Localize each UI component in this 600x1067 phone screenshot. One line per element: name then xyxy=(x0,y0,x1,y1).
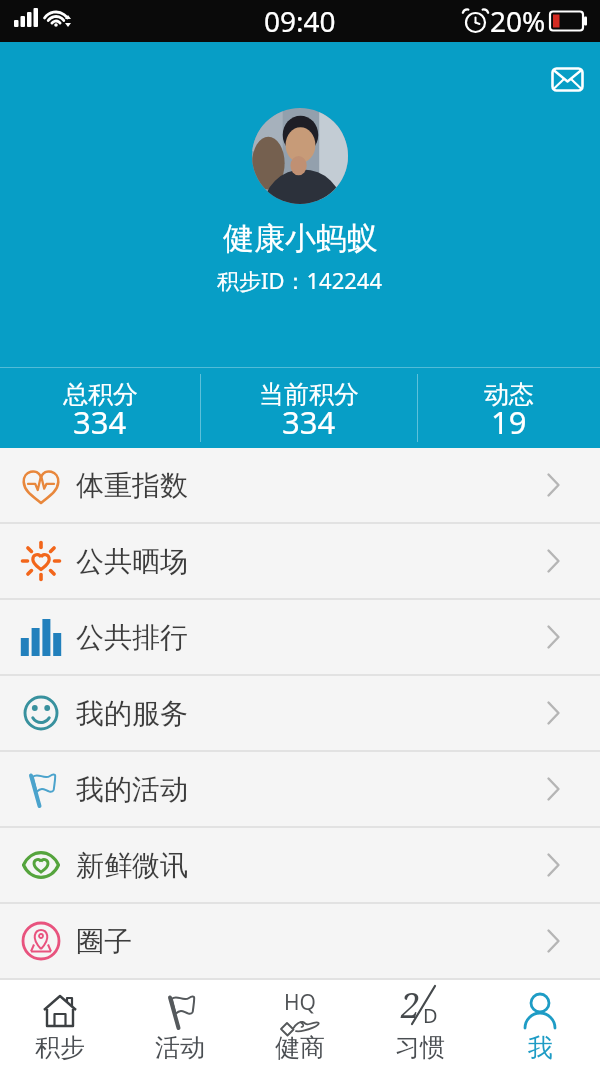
staticText: 当前积分 xyxy=(259,379,359,410)
button[interactable]: 我的服务 xyxy=(0,676,600,750)
staticText: 圈子 xyxy=(76,924,132,959)
staticText: 19 xyxy=(491,401,527,443)
staticText: 公共晒场 xyxy=(76,544,188,579)
staticText: 动态 xyxy=(484,379,534,410)
button[interactable]: 我的活动 xyxy=(0,752,600,826)
button[interactable]: 当前积分 xyxy=(201,368,417,448)
staticText: 我 xyxy=(528,1032,553,1063)
button[interactable]: 习惯 xyxy=(360,980,480,1067)
staticText: 334 xyxy=(73,401,127,443)
staticText: 2 xyxy=(401,982,421,1028)
staticText: 体重指数 xyxy=(76,468,188,503)
staticText: HQ xyxy=(284,988,316,1017)
button[interactable]: 新鲜微讯 xyxy=(0,828,600,902)
button[interactable]: 公共排行 xyxy=(0,600,600,674)
staticText: 积步 xyxy=(35,1032,85,1063)
button[interactable]: 圈子 xyxy=(0,904,600,978)
staticText: 334 xyxy=(282,401,336,443)
staticText: 总积分 xyxy=(63,379,138,410)
staticText: 习惯 xyxy=(395,1032,445,1063)
button[interactable] xyxy=(544,56,590,102)
staticText: 我的活动 xyxy=(76,772,188,807)
button[interactable]: 总积分 xyxy=(0,368,200,448)
button[interactable]: 积步 xyxy=(0,980,120,1067)
staticText: 公共排行 xyxy=(76,620,188,655)
button[interactable]: 健商 xyxy=(240,980,360,1067)
staticText: 积步ID：142244 xyxy=(217,265,383,295)
staticText: 健商 xyxy=(275,1032,325,1063)
staticText: 健康小蚂蚁 xyxy=(223,219,378,258)
staticText: 09:40 xyxy=(264,2,336,40)
staticText: 新鲜微讯 xyxy=(76,848,188,883)
button[interactable]: 我 xyxy=(480,980,600,1067)
staticText: 20% xyxy=(490,2,546,40)
button[interactable]: 体重指数 xyxy=(0,448,600,522)
staticText: D xyxy=(423,1002,438,1029)
staticText: 活动 xyxy=(155,1032,205,1063)
button[interactable]: 公共晒场 xyxy=(0,524,600,598)
staticText: 我的服务 xyxy=(76,696,188,731)
button[interactable]: 活动 xyxy=(120,980,240,1067)
button[interactable]: 动态 xyxy=(418,368,600,448)
